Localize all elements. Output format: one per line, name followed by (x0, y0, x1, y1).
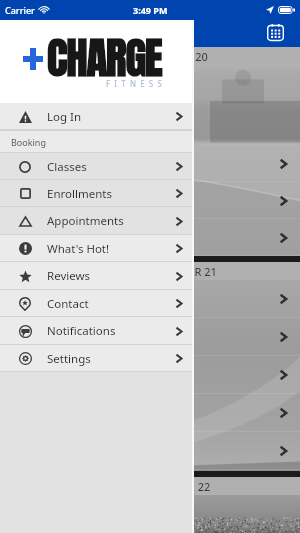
button[interactable] (0, 356, 300, 394)
staticText: THU, MAR 21 (149, 264, 217, 279)
button[interactable]: What's Hot! (0, 235, 194, 262)
button[interactable]: Enrollments (0, 180, 194, 207)
staticText: Settings (47, 351, 91, 367)
staticText: 3:49 PM (133, 4, 168, 16)
staticText: Appointments (47, 213, 124, 229)
staticText: Enrollments (47, 186, 112, 202)
button[interactable] (0, 318, 300, 356)
button[interactable] (0, 280, 300, 318)
button[interactable] (0, 182, 300, 219)
button[interactable]: Reviews (0, 262, 194, 290)
staticText: WED, MARCH 20 (123, 49, 208, 64)
button[interactable] (0, 219, 300, 256)
button[interactable]: Notifications (0, 317, 194, 345)
staticText: Notifications (47, 323, 116, 339)
button[interactable]: Classes (0, 153, 194, 180)
button[interactable]: Calendar (267, 24, 284, 41)
staticText: FRI, MAR 22 (148, 479, 211, 494)
staticText: CHARGE (47, 25, 162, 90)
button[interactable]: Contact (0, 290, 194, 317)
staticText: Contact (47, 296, 89, 312)
button[interactable] (0, 394, 300, 432)
staticText: Reviews (47, 268, 91, 284)
staticText: Carrier (5, 4, 35, 16)
button[interactable]: Settings (0, 345, 194, 372)
button[interactable]: Log In (0, 103, 194, 130)
staticText: Classes (47, 159, 87, 175)
button[interactable] (0, 145, 300, 182)
button[interactable]: Appointments (0, 207, 194, 235)
button[interactable] (0, 432, 300, 470)
staticText: Booking (11, 136, 46, 148)
staticText: Log In (47, 109, 82, 125)
staticText: FITNESS (106, 78, 167, 89)
staticText: What's Hot! (47, 241, 110, 257)
